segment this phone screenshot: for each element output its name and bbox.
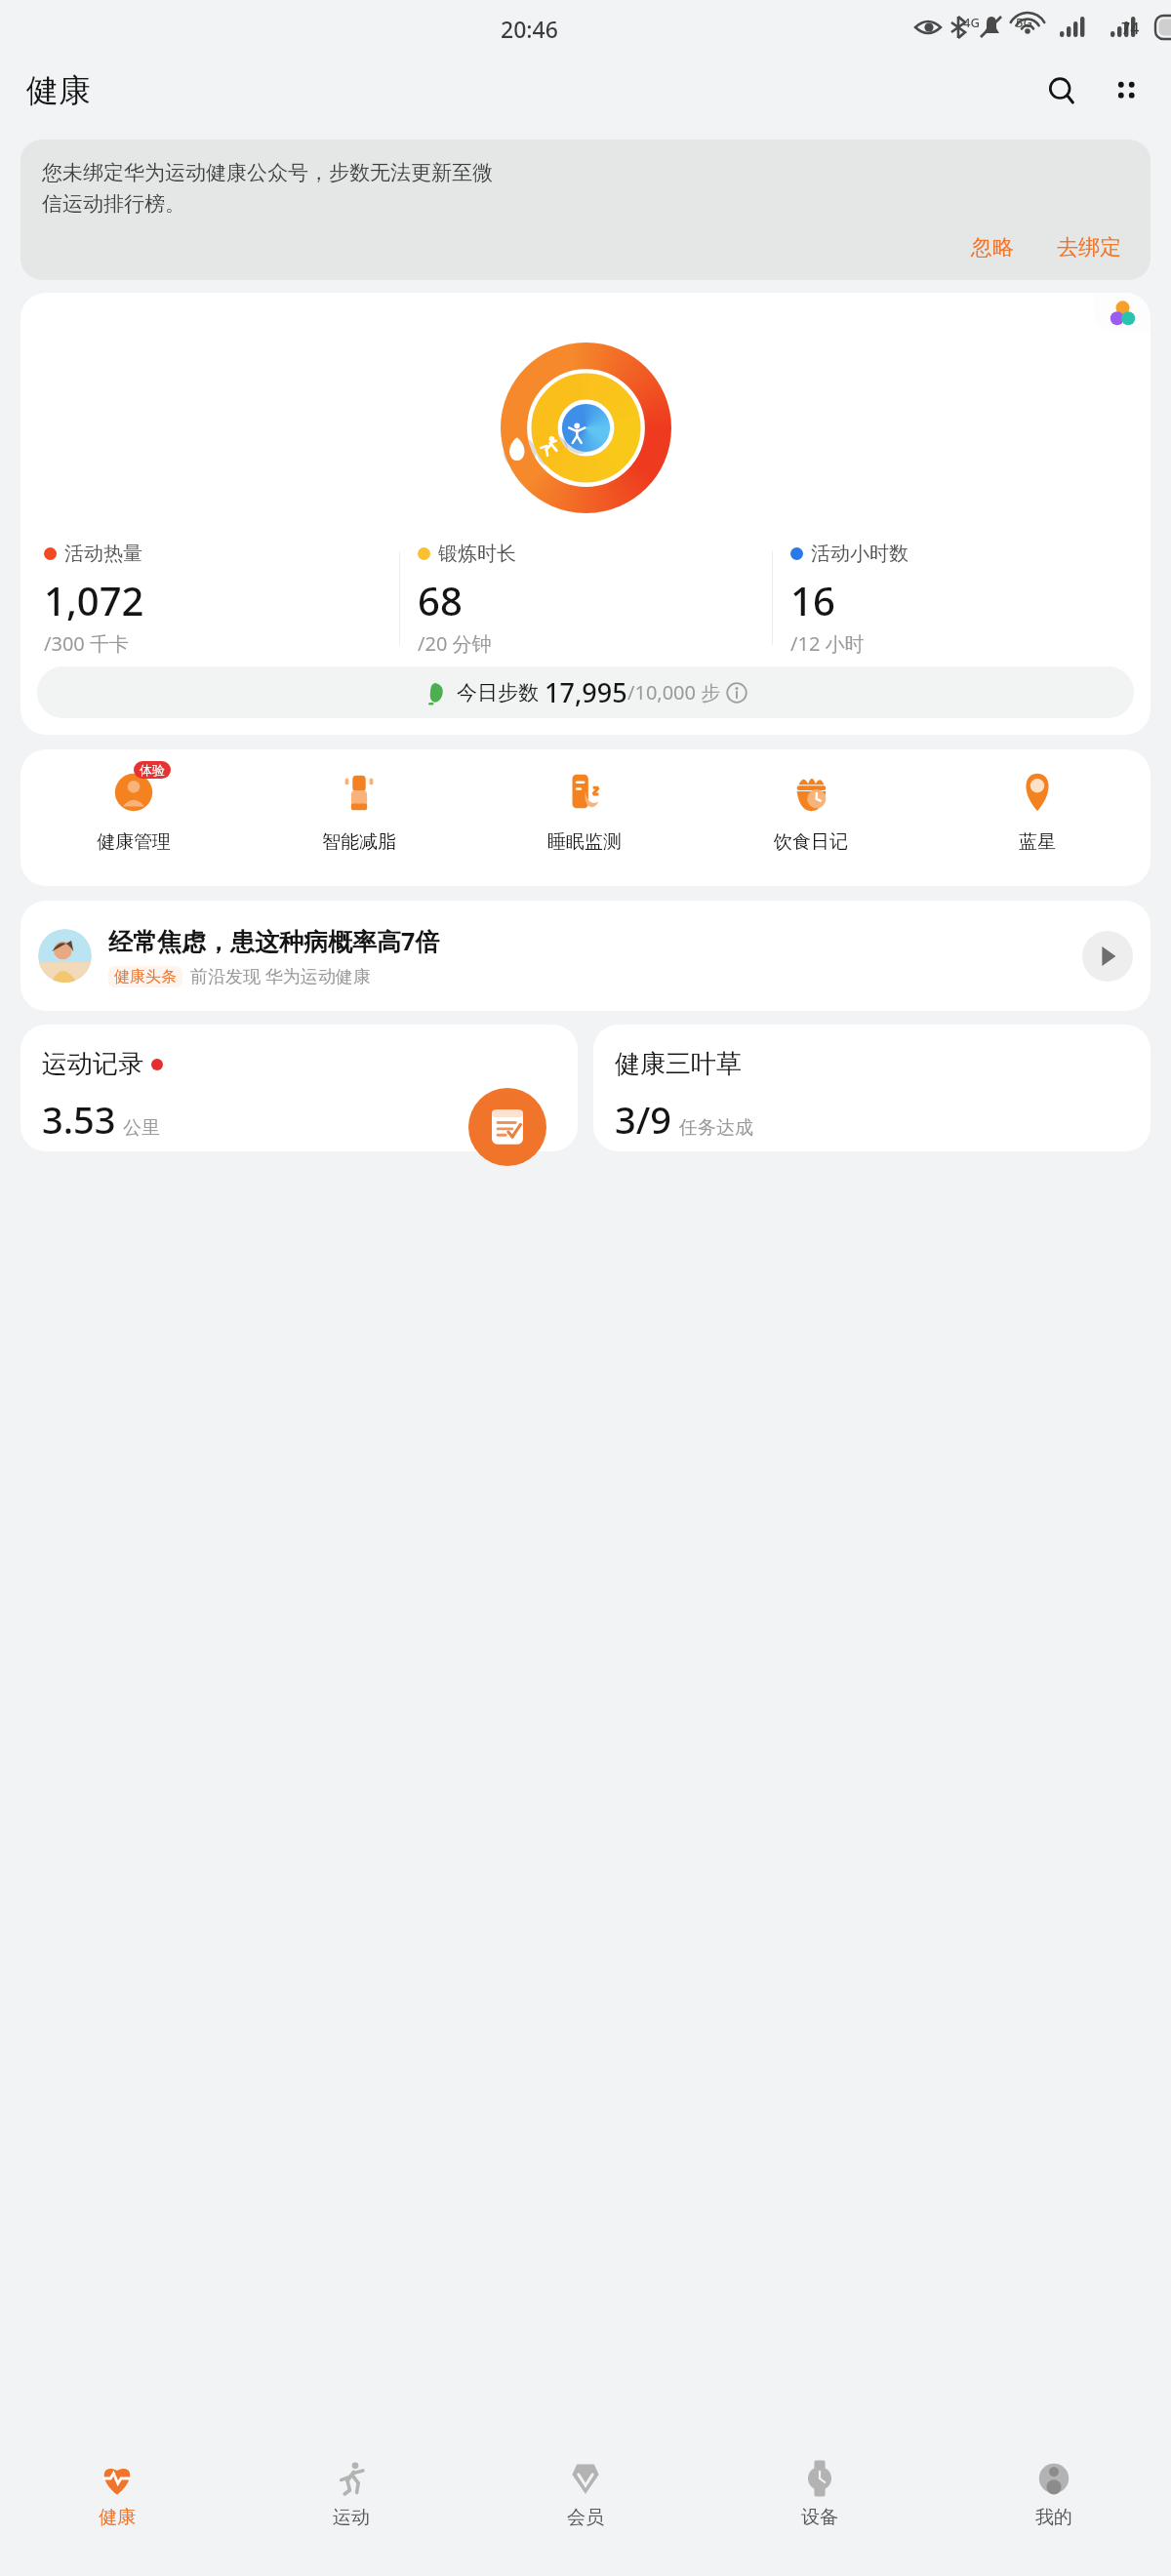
- staticText: 今日步数: [457, 678, 545, 706]
- button[interactable]: 蓝星: [924, 767, 1151, 854]
- staticText: /20 分钟: [418, 630, 492, 657]
- button[interactable]: Search: [1036, 65, 1087, 116]
- staticText: /12 小时: [790, 630, 865, 657]
- button[interactable]: 活动热量: [20, 293, 1151, 735]
- staticText: 我的: [1035, 2506, 1072, 2529]
- button[interactable]: 我的: [937, 2457, 1171, 2576]
- button[interactable]: Add record: [468, 1088, 546, 1166]
- staticText: 健康管理: [97, 830, 171, 854]
- staticText: 健康: [99, 2506, 136, 2529]
- staticText: 活动热量: [64, 542, 142, 566]
- staticText: 会员: [567, 2506, 604, 2529]
- button[interactable]: 睡眠监测: [471, 767, 698, 854]
- button[interactable]: 今日步数: [37, 666, 1134, 718]
- staticText: 任务达成: [679, 1116, 753, 1140]
- staticText: 20:46: [501, 14, 558, 44]
- staticText: 设备: [801, 2506, 838, 2529]
- staticText: 公里: [123, 1116, 160, 1140]
- button[interactable]: 活动热量: [26, 542, 399, 657]
- button[interactable]: More options: [1101, 65, 1151, 116]
- staticText: 去绑定: [1057, 234, 1121, 262]
- button[interactable]: 运动: [234, 2457, 468, 2576]
- staticText: 74: [1121, 18, 1140, 39]
- staticText: 健康三叶草: [615, 1048, 742, 1080]
- staticText: 4G: [963, 14, 980, 31]
- button[interactable]: 健康三叶草: [593, 1025, 1151, 1151]
- staticText: 健康头条: [114, 967, 177, 986]
- button[interactable]: 活动小时数: [773, 542, 1145, 657]
- staticText: 体验: [140, 762, 165, 778]
- button[interactable]: 智能减脂: [246, 767, 471, 854]
- button[interactable]: Play: [1082, 931, 1133, 982]
- button[interactable]: 您未绑定华为运动健康公众号，步数无法更新至微 信运动排行榜。: [20, 140, 1151, 280]
- staticText: 经常焦虑，患这种病概率高7倍: [108, 924, 440, 957]
- staticText: 您未绑定华为运动健康公众号，步数无法更新至微 信运动排行榜。: [42, 160, 493, 217]
- staticText: 17,995: [545, 674, 627, 710]
- staticText: 前沿发现 华为运动健康: [190, 964, 371, 988]
- staticText: 健康: [26, 70, 91, 111]
- staticText: 忽略: [971, 234, 1014, 262]
- staticText: 1,072: [44, 574, 144, 626]
- staticText: /300 千卡: [44, 630, 129, 657]
- button[interactable]: 健康: [0, 2457, 234, 2576]
- staticText: 3/9: [615, 1094, 672, 1145]
- button[interactable]: 设备: [703, 2457, 937, 2576]
- staticText: 68: [418, 574, 463, 626]
- button[interactable]: 锻炼时长: [400, 542, 772, 657]
- staticText: 16: [790, 574, 835, 626]
- staticText: 3.53: [42, 1094, 116, 1145]
- button[interactable]: 经常焦虑，患这种病概率高7倍: [20, 901, 1151, 1011]
- staticText: /10,000 步: [627, 679, 726, 705]
- staticText: 锻炼时长: [438, 542, 516, 566]
- button[interactable]: 会员: [468, 2457, 703, 2576]
- button[interactable]: 忽略: [963, 230, 1022, 265]
- staticText: 睡眠监测: [547, 830, 622, 854]
- staticText: 智能减脂: [322, 830, 396, 854]
- button[interactable]: Themes: [1094, 293, 1151, 332]
- button[interactable]: 运动记录: [20, 1025, 578, 1151]
- staticText: 蓝星: [1019, 830, 1056, 854]
- button[interactable]: 体验: [20, 767, 246, 854]
- staticText: 运动记录: [42, 1048, 143, 1080]
- staticText: 5G: [1016, 14, 1032, 31]
- button[interactable]: 饮食日记: [698, 767, 924, 854]
- staticText: 运动: [333, 2506, 370, 2529]
- staticText: 活动小时数: [811, 542, 909, 566]
- staticText: 饮食日记: [774, 830, 848, 854]
- button[interactable]: 去绑定: [1049, 230, 1129, 265]
